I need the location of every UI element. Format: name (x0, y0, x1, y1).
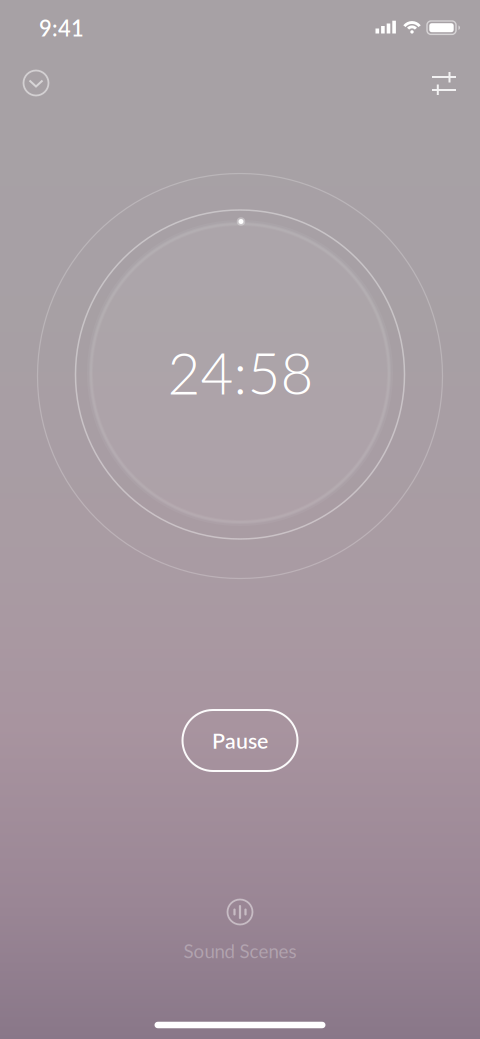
staticText: 24:58 (167, 338, 313, 406)
button[interactable]: Timer settings (425, 66, 461, 102)
staticText: Pause (212, 728, 268, 753)
button[interactable]: Sound Scenes (170, 899, 310, 963)
button[interactable]: Pause (182, 710, 297, 771)
button[interactable]: Minimize (18, 65, 54, 101)
staticText: Sound Scenes (183, 940, 296, 962)
staticText: 9:41 (39, 15, 84, 41)
